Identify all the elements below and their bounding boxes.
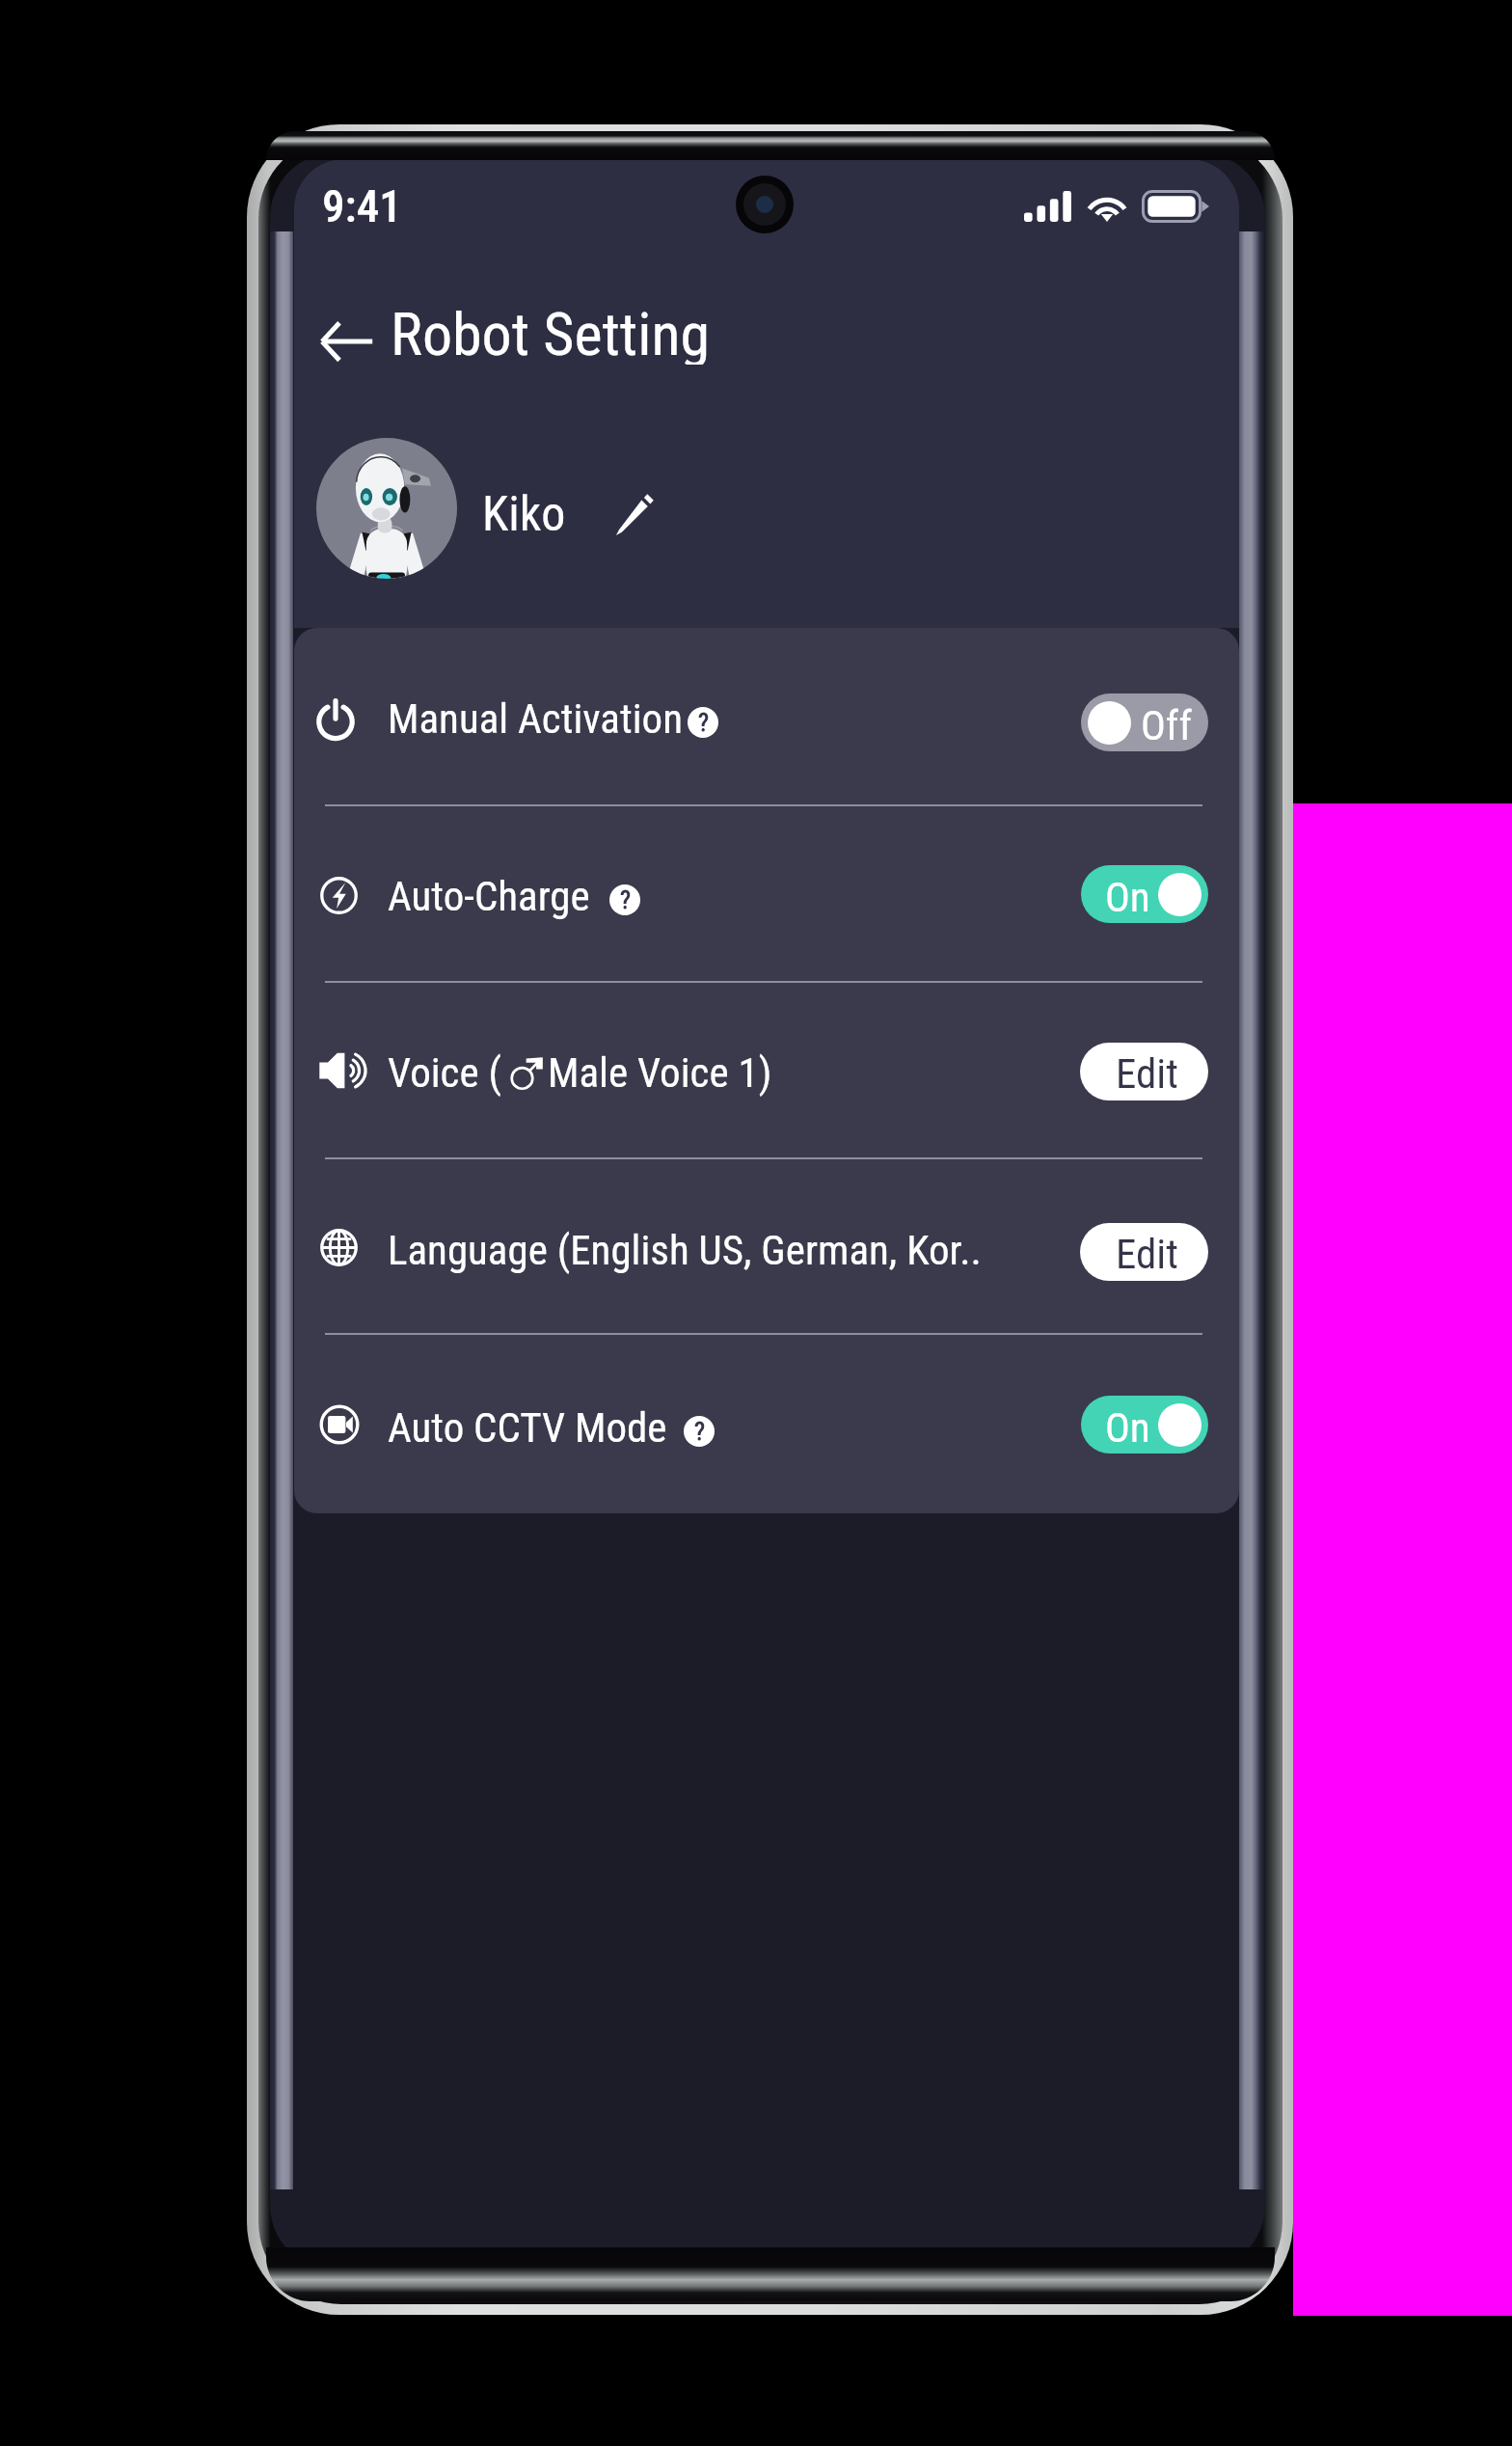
- staticText: Robot Setting: [391, 299, 711, 365]
- button[interactable]: [295, 635, 1238, 810]
- staticText: Voice (: [388, 1048, 1063, 1097]
- other: Back: [316, 310, 374, 354]
- button[interactable]: Edit name: [612, 495, 657, 539]
- staticText: ?: [620, 885, 631, 914]
- staticText: Edit: [1116, 1230, 1178, 1278]
- staticText: On: [1105, 873, 1150, 921]
- staticText: Off: [1141, 701, 1193, 749]
- staticText: Kiko: [482, 486, 566, 543]
- button[interactable]: Help: [609, 884, 640, 915]
- staticText: On: [1105, 1403, 1150, 1452]
- staticText: Edit: [1116, 1049, 1178, 1098]
- button[interactable]: Help: [688, 707, 718, 738]
- button[interactable]: Help: [684, 1416, 715, 1447]
- staticText: 9:41: [322, 179, 402, 232]
- staticText: Manual Activation: [388, 694, 1063, 743]
- button[interactable]: Toggle off: [1081, 693, 1208, 751]
- staticText: ?: [698, 708, 709, 737]
- staticText: Language (English US, German, Kor..: [388, 1226, 1063, 1274]
- button[interactable]: Toggle on: [1081, 865, 1208, 923]
- staticText: ?: [694, 1417, 705, 1446]
- staticText: Auto CCTV Mode: [388, 1403, 1063, 1452]
- staticText: Auto-Charge: [388, 872, 1063, 920]
- button[interactable]: [295, 984, 1238, 1159]
- staticText: Male Voice 1): [548, 1048, 772, 1097]
- button[interactable]: Toggle on: [1081, 1396, 1208, 1454]
- button[interactable]: Edit: [1080, 1223, 1208, 1281]
- button[interactable]: Edit: [1080, 1043, 1208, 1101]
- button[interactable]: [295, 1338, 1238, 1513]
- button[interactable]: [295, 1164, 1238, 1340]
- button[interactable]: [295, 807, 1238, 983]
- button[interactable]: Robot avatar: [316, 438, 457, 579]
- button[interactable]: Back: [316, 299, 711, 365]
